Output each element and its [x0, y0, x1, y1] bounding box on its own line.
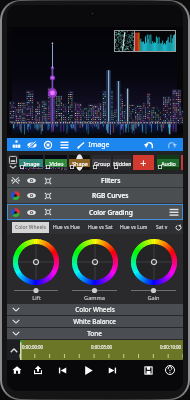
staticText: Shape — [72, 160, 88, 167]
staticText: Image — [23, 160, 40, 167]
button[interactable]: Hue vs Lum — [117, 221, 151, 234]
staticText: Group — [94, 160, 110, 167]
staticText: Sat v — [156, 224, 168, 231]
button[interactable]: Color Wheels — [12, 222, 49, 233]
button[interactable]: Hide — [24, 138, 40, 151]
staticText: Lift — [32, 294, 41, 302]
staticText: RGB Curves — [92, 191, 129, 200]
staticText: Tone — [87, 329, 102, 338]
button[interactable]: Nodes — [9, 138, 24, 151]
button[interactable]: Image — [19, 155, 43, 170]
staticText: Gamma — [84, 294, 105, 302]
staticText: 0:00:10:00 — [160, 344, 182, 350]
staticText: Color Wheels — [75, 305, 115, 314]
button[interactable]: Shape — [69, 155, 90, 170]
staticText: Filters — [101, 176, 121, 185]
staticText: 0:00:05:00 — [91, 344, 113, 350]
staticText: Color Wheels — [15, 224, 46, 231]
staticText: + — [140, 155, 147, 170]
button[interactable]: Next — [103, 362, 121, 378]
button[interactable]: Home — [8, 362, 26, 378]
staticText: Hue vs Lum — [120, 224, 148, 231]
button[interactable]: Video — [45, 155, 67, 170]
staticText: Hue vs Hue — [53, 224, 80, 231]
button[interactable]: Tone — [7, 328, 183, 339]
staticText: Image — [88, 140, 110, 150]
button[interactable]: Color Wheels — [7, 304, 183, 315]
button[interactable]: Layers panel — [9, 156, 17, 169]
button[interactable]: 0:00:00:00 — [20, 340, 183, 360]
button[interactable]: Reset — [173, 221, 183, 234]
button[interactable]: Gain — [124, 234, 183, 304]
button[interactable]: Audio — [157, 155, 179, 170]
button[interactable]: Export — [29, 362, 47, 378]
staticText: Audio — [161, 160, 176, 167]
staticText: Video — [49, 160, 64, 167]
button[interactable]: Hidden — [113, 155, 131, 170]
button[interactable]: RGB Curves — [7, 188, 183, 203]
button[interactable]: Color Grading — [7, 204, 183, 220]
button[interactable]: Redo — [161, 138, 183, 151]
staticText: Hue vs Sat — [88, 224, 113, 231]
button[interactable]: Help — [161, 362, 179, 378]
button[interactable]: Lift — [7, 234, 65, 304]
staticText: Hidden — [113, 160, 131, 167]
staticText: Color Grading — [89, 208, 133, 217]
button[interactable]: Sat v — [151, 221, 173, 234]
button[interactable]: Menu — [56, 138, 72, 151]
staticText: White Balance — [73, 317, 116, 326]
button[interactable]: Hue vs Sat — [83, 221, 117, 234]
button[interactable]: Undo — [137, 138, 161, 151]
button[interactable]: Collapse timeline — [7, 340, 20, 360]
button[interactable]: Mask — [40, 138, 56, 151]
button[interactable]: Hue vs Hue — [49, 221, 83, 234]
staticText: Gain — [147, 294, 160, 302]
button[interactable]: Group — [92, 155, 111, 170]
button[interactable]: Image — [76, 140, 111, 150]
staticText: 0:00:00:00 — [22, 344, 44, 350]
button[interactable]: Gamma — [65, 234, 124, 304]
button[interactable]: Play — [79, 362, 97, 378]
button[interactable]: Add layer — [133, 155, 154, 170]
button[interactable]: Save — [139, 362, 157, 378]
button[interactable]: Filters — [7, 174, 183, 187]
button[interactable]: Previous — [53, 362, 71, 378]
button[interactable]: White Balance — [7, 316, 183, 327]
